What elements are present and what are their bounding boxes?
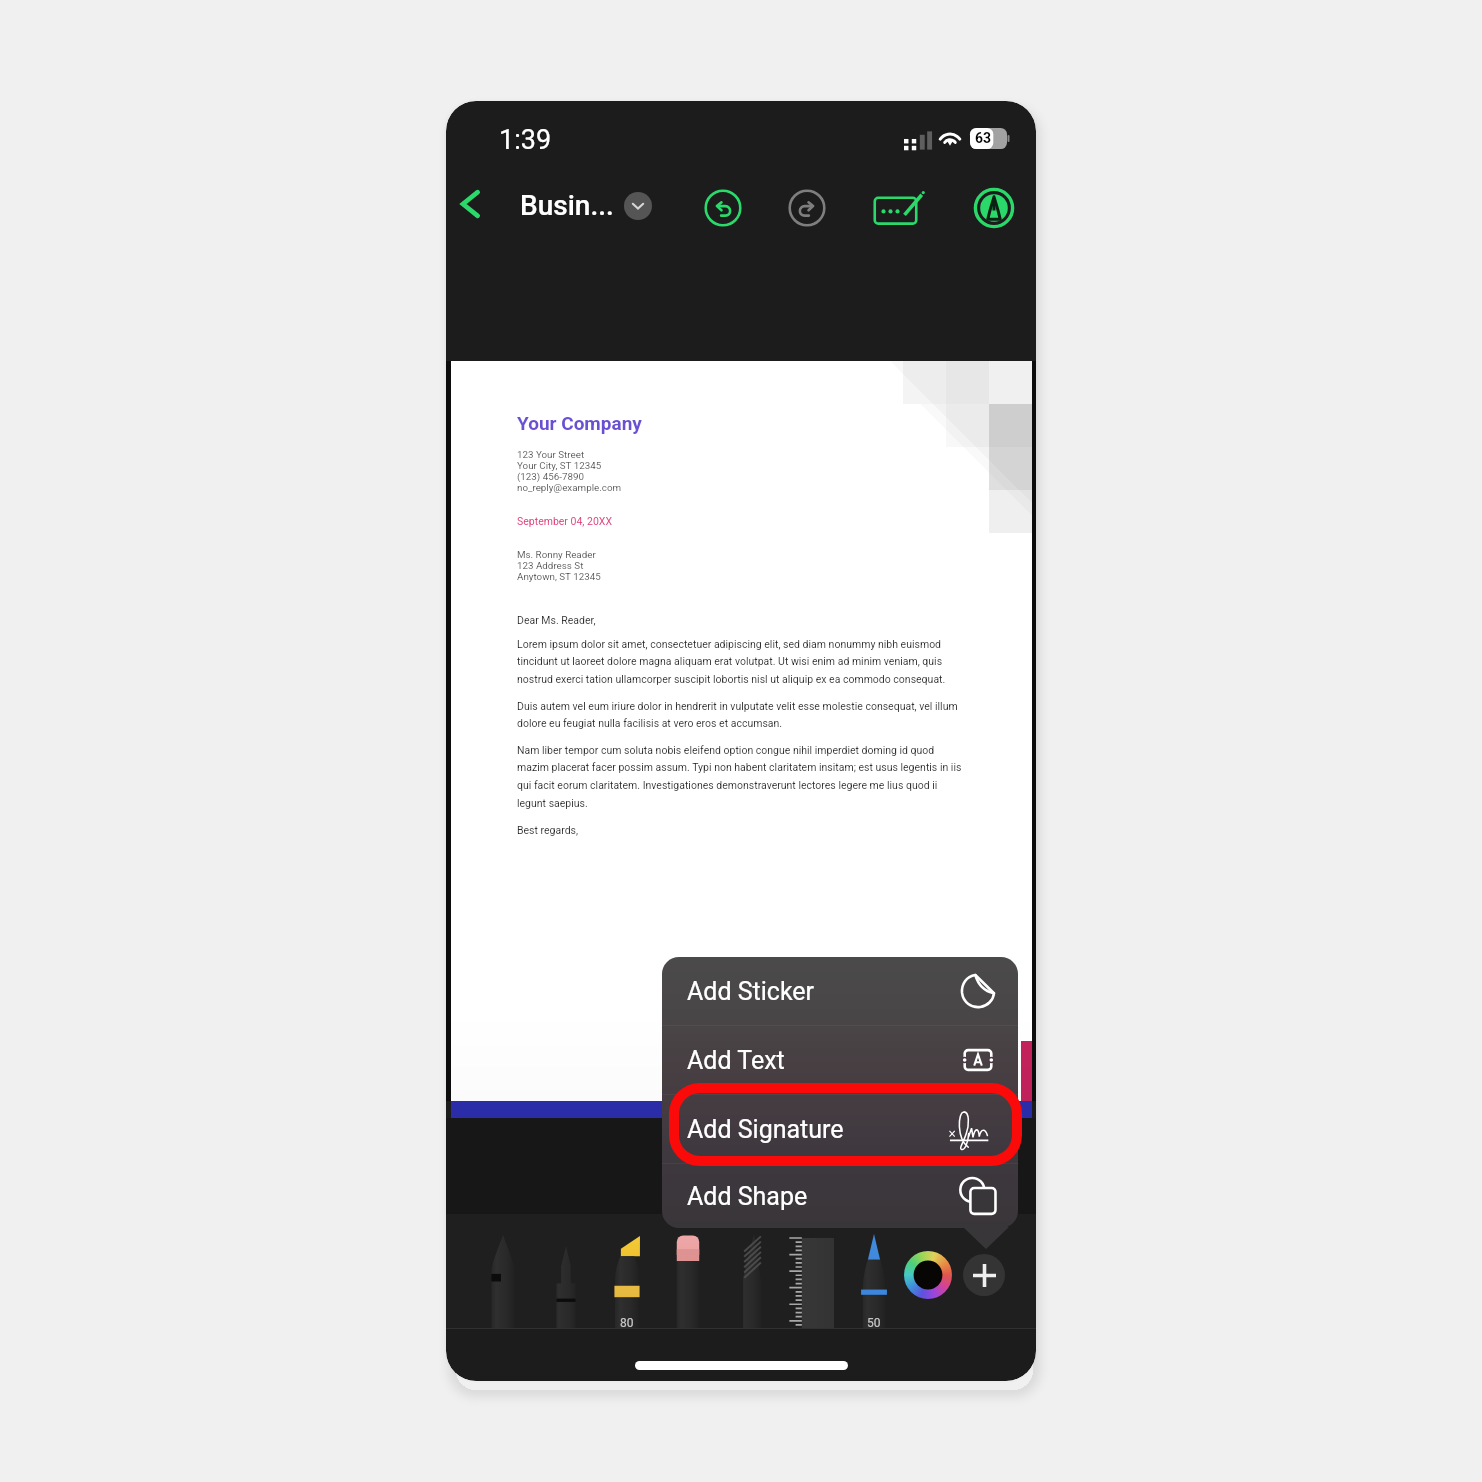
button[interactable]: Colour picker	[904, 1251, 952, 1299]
staticText: Dear Ms. Reader,	[517, 614, 596, 626]
button[interactable]: Drawing tool	[733, 1234, 767, 1329]
staticText: 63	[975, 130, 992, 146]
button[interactable]: Annotate	[869, 180, 925, 236]
staticText: Lorem ipsum dolor sit amet, consectetuer…	[517, 638, 963, 686]
staticText: Add Sticker	[687, 977, 815, 1006]
button[interactable]: Busin...	[514, 184, 652, 228]
staticText: 50	[867, 1316, 881, 1330]
button[interactable]: Add Sticker	[662, 957, 1018, 1025]
button[interactable]: Drawing tool	[671, 1234, 705, 1329]
staticText: September 04, 20XX	[517, 515, 612, 527]
staticText: 123 Your Street	[517, 449, 585, 460]
staticText: Add Signature	[687, 1115, 844, 1144]
button[interactable]: Drawing tool	[486, 1234, 520, 1329]
staticText: Your City, ST 12345	[517, 460, 602, 471]
staticText: Best regards,	[517, 824, 579, 836]
staticText: (123) 456-7890	[517, 471, 584, 482]
button[interactable]: Add Signature	[662, 1095, 1018, 1163]
button[interactable]: Drawing tool	[549, 1234, 583, 1329]
button[interactable]: Pen tool	[966, 180, 1022, 236]
staticText: Add Text	[687, 1046, 785, 1075]
staticText: no_reply@example.com	[517, 482, 622, 493]
staticText: Anytown, ST 12345	[517, 571, 601, 582]
staticText: Your Company	[517, 412, 642, 434]
staticText: Duis autem vel eum iriure dolor in hendr…	[517, 700, 963, 730]
button[interactable]: Undo	[695, 180, 751, 236]
button[interactable]: Drawing tool	[610, 1234, 644, 1329]
staticText: 80	[620, 1316, 634, 1330]
button[interactable]: Add Text	[662, 1026, 1018, 1094]
staticText: Busin...	[520, 189, 614, 222]
button[interactable]: Drawing tool	[857, 1234, 891, 1329]
button[interactable]: Back	[448, 182, 492, 226]
button[interactable]: Add tool	[963, 1254, 1005, 1296]
staticText: 1:39	[499, 124, 552, 156]
staticText: Add Shape	[687, 1182, 808, 1211]
staticText: Ms. Ronny Reader	[517, 549, 596, 560]
button[interactable]: Add Shape	[662, 1164, 1018, 1228]
staticText: 123 Address St	[517, 560, 584, 571]
staticText: Nam liber tempor cum soluta nobis eleife…	[517, 744, 963, 810]
button[interactable]: Redo	[779, 180, 835, 236]
